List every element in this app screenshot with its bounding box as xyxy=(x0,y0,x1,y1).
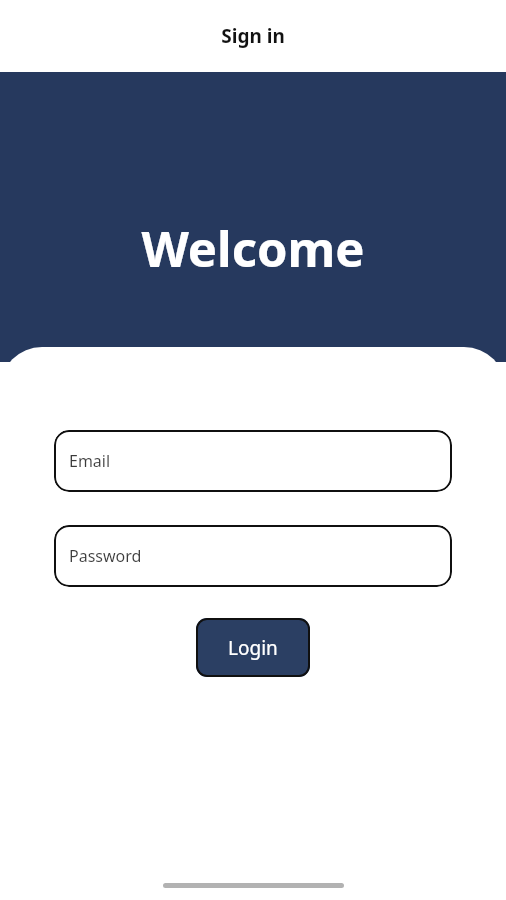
other: Home indicator xyxy=(163,883,344,888)
staticText: Login xyxy=(228,635,278,661)
staticText: Email xyxy=(69,450,111,472)
button[interactable]: Login xyxy=(196,618,310,677)
staticText: Password xyxy=(69,545,142,567)
staticText: Welcome xyxy=(0,215,506,282)
button[interactable]: Email xyxy=(54,430,452,492)
button[interactable]: Password xyxy=(54,525,452,587)
staticText: Sign in xyxy=(221,23,285,49)
